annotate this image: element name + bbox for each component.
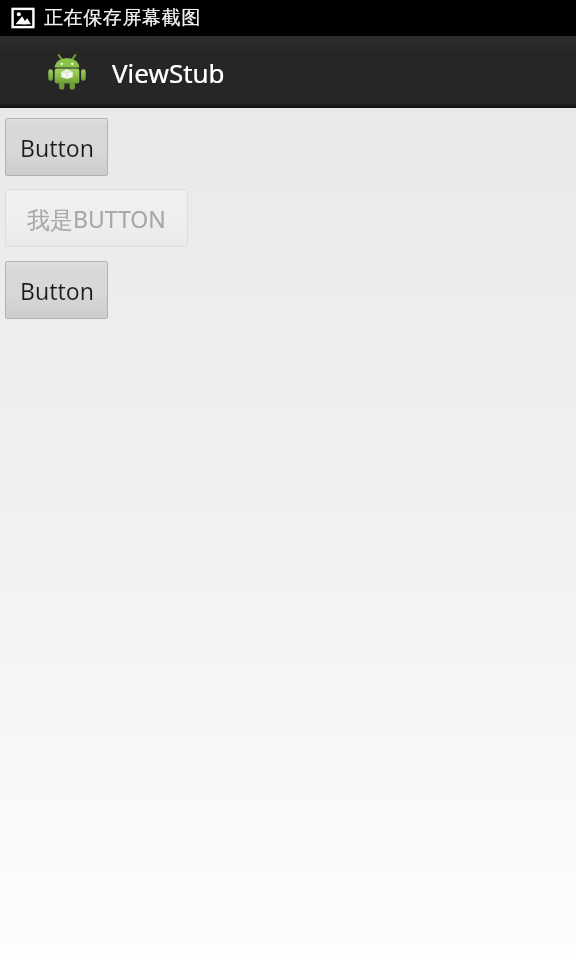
staticText: ViewStub bbox=[112, 55, 225, 90]
button[interactable]: Button bbox=[5, 261, 108, 319]
staticText: Button bbox=[20, 275, 94, 306]
staticText: 我是BUTTON bbox=[27, 203, 166, 234]
button[interactable]: 我是BUTTON bbox=[5, 189, 188, 247]
staticText: Button bbox=[20, 132, 94, 163]
staticText: 正在保存屏幕截图 bbox=[44, 6, 201, 30]
button[interactable]: Button bbox=[5, 118, 108, 176]
